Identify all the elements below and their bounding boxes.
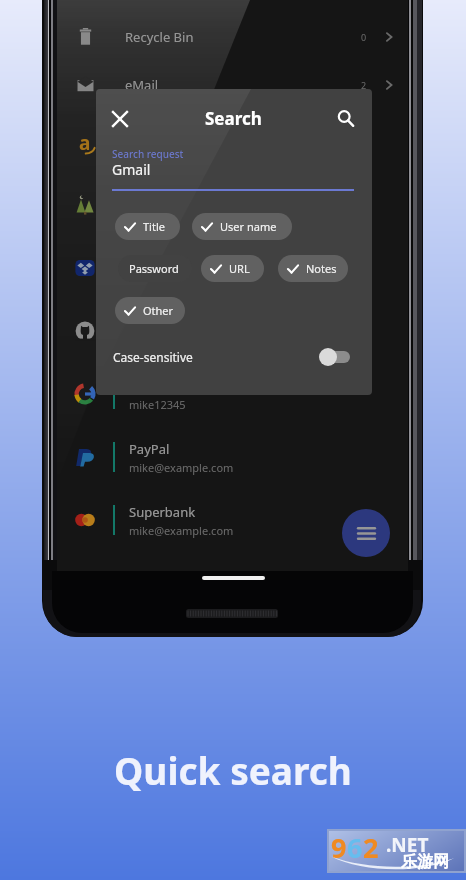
- button[interactable]: Other: [115, 297, 185, 324]
- button[interactable]: Camping: [57, 179, 408, 231]
- staticText: mike: [129, 208, 155, 223]
- button[interactable]: URL: [201, 255, 264, 282]
- staticText: User name: [220, 219, 277, 234]
- staticText: PayPal: [129, 440, 170, 458]
- staticText: Other: [143, 303, 174, 318]
- staticText: mike@example.com: [129, 145, 234, 160]
- staticText: 乐游网: [401, 852, 449, 872]
- staticText: .NET: [386, 832, 429, 858]
- button[interactable]: Notes: [278, 255, 348, 282]
- staticText: URL: [229, 261, 250, 276]
- staticText: 0: [361, 31, 367, 43]
- button[interactable]: Recycle Bin: [57, 13, 408, 61]
- button[interactable]: Title: [115, 213, 180, 240]
- staticText: GitHub: [129, 314, 173, 332]
- staticText: eMail: [125, 76, 159, 94]
- staticText: a: [79, 130, 91, 150]
- staticText: Search request: [112, 147, 184, 161]
- button[interactable]: Menu: [342, 509, 390, 557]
- staticText: Dropbox: [129, 251, 182, 269]
- button[interactable]: Search: [331, 104, 360, 133]
- button[interactable]: PayPal: [57, 431, 408, 483]
- staticText: Gmail: [112, 160, 151, 179]
- staticText: Search: [205, 107, 262, 130]
- staticText: Title: [143, 219, 165, 234]
- button[interactable]: Superbank: [57, 494, 408, 546]
- staticText: Notes: [306, 261, 337, 276]
- staticText: Case-sensitive: [113, 349, 193, 365]
- staticText: mike12345: [129, 397, 186, 412]
- staticText: Superbank: [129, 503, 196, 521]
- staticText: 9: [331, 829, 347, 866]
- staticText: Camping: [129, 188, 185, 206]
- button[interactable]: Dropbox: [57, 242, 408, 294]
- staticText: 6: [347, 829, 363, 866]
- staticText: 2: [361, 79, 367, 91]
- staticText: Password: [129, 261, 179, 276]
- staticText: mike@example.com: [129, 460, 234, 475]
- button[interactable]: a: [57, 116, 408, 168]
- button[interactable]: Close: [105, 104, 134, 133]
- button[interactable]: Google: [57, 368, 408, 420]
- button[interactable]: User name: [192, 213, 292, 240]
- staticText: mike@example.com: [129, 271, 234, 286]
- staticText: Quick search: [0, 745, 466, 795]
- staticText: Recycle Bin: [125, 28, 194, 46]
- staticText: 2: [363, 829, 379, 866]
- button[interactable]: Case-sensitive: [96, 337, 372, 377]
- button[interactable]: GitHub: [57, 305, 408, 357]
- staticText: mike@example.com: [129, 523, 234, 538]
- button[interactable]: Password: [118, 255, 192, 282]
- button[interactable]: eMail: [57, 61, 408, 109]
